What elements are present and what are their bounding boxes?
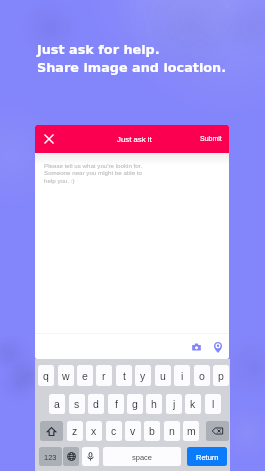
staticText: b [149,425,155,437]
staticText: Please tell us what you're lookin for. S… [44,162,143,184]
button[interactable]: Attach image [186,337,206,357]
staticText: m [187,425,196,437]
button[interactable]: space [103,447,181,466]
staticText: s [74,398,80,410]
button[interactable]: Share location [208,337,228,357]
button[interactable]: m [183,421,199,441]
button[interactable]: k [185,394,201,414]
staticText: Just ask it [117,135,152,144]
button[interactable]: Return [187,447,227,466]
staticText: c [111,425,117,437]
staticText: w [62,370,70,382]
button[interactable]: Submit [193,130,229,148]
button[interactable]: e [77,365,93,386]
staticText: space [132,453,153,461]
staticText: a [54,398,60,410]
button[interactable]: q [38,365,54,386]
staticText: Share image and location. [37,60,227,75]
staticText: i [181,370,184,382]
button[interactable]: x [86,421,102,441]
button[interactable]: g [127,394,143,414]
button[interactable]: u [155,365,171,386]
staticText: 123 [44,453,57,461]
button[interactable]: v [125,421,141,441]
staticText: e [82,370,88,382]
staticText: k [190,398,196,410]
button[interactable]: j [166,394,182,414]
staticText: p [218,370,224,382]
button[interactable]: s [69,394,85,414]
button[interactable]: h [146,394,162,414]
staticText: u [160,370,166,382]
staticText: r [102,370,106,382]
button[interactable]: z [67,421,83,441]
staticText: t [123,370,126,382]
staticText: o [199,370,205,382]
button[interactable]: Shift [40,421,63,441]
staticText: g [132,398,138,410]
staticText: q [43,370,49,382]
staticText: d [93,398,99,410]
button[interactable]: Dictate [82,447,99,466]
button[interactable]: d [88,394,104,414]
staticText: h [151,398,157,410]
button[interactable]: y [135,365,151,386]
staticText: Submit [200,135,222,143]
staticText: x [91,425,97,437]
button[interactable]: l [205,394,221,414]
button[interactable]: n [164,421,180,441]
button[interactable]: Close [37,127,61,151]
button[interactable]: o [194,365,210,386]
staticText: y [140,370,146,382]
button[interactable]: a [49,394,65,414]
button[interactable]: b [144,421,160,441]
staticText: n [169,425,175,437]
button[interactable]: w [58,365,74,386]
button[interactable]: i [174,365,190,386]
button[interactable]: r [96,365,112,386]
button[interactable]: 123 [39,447,62,466]
staticText: v [130,425,136,437]
staticText: Just ask for help. [37,42,160,57]
staticText: f [115,398,118,410]
staticText: j [173,398,176,410]
staticText: Return [196,453,219,461]
button[interactable]: f [108,394,124,414]
button[interactable]: c [106,421,122,441]
button[interactable]: Backspace [206,421,229,441]
staticText: l [212,398,215,410]
button[interactable]: p [213,365,229,386]
button[interactable]: t [116,365,132,386]
button[interactable]: Change keyboard [63,447,79,466]
staticText: z [72,425,78,437]
